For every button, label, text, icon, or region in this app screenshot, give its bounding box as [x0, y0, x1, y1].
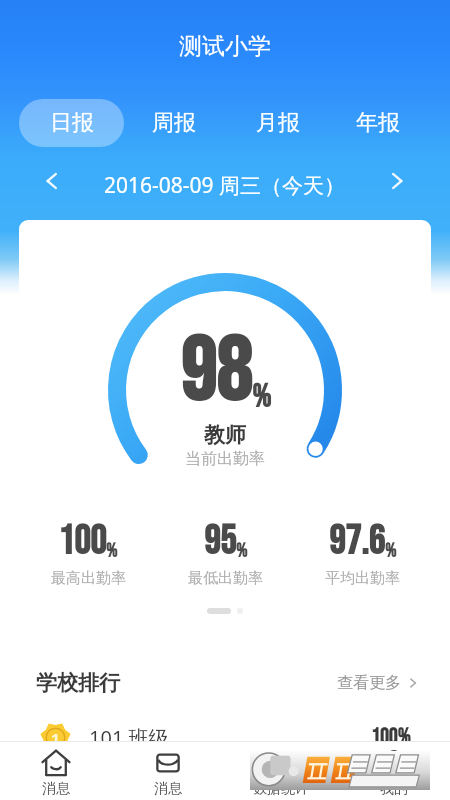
- staticText: 平均出勤率: [325, 569, 400, 588]
- staticText: 最低出勤率: [188, 569, 263, 588]
- staticText: %: [252, 378, 271, 416]
- staticText: %: [236, 540, 248, 563]
- staticText: 学校排行: [36, 670, 120, 696]
- staticText: 98: [180, 320, 252, 427]
- staticText: 100: [58, 518, 106, 566]
- staticText: 测试小学: [179, 32, 271, 61]
- button[interactable]: 消息: [0, 742, 112, 800]
- button[interactable]: Next day: [381, 165, 413, 197]
- button[interactable]: 我的: [337, 742, 450, 800]
- button[interactable]: 数据统计: [224, 742, 337, 800]
- staticText: 1: [51, 728, 60, 748]
- staticText: 数据统计: [253, 780, 309, 798]
- button[interactable]: 日报: [19, 99, 124, 147]
- staticText: 100%: [371, 724, 411, 750]
- staticText: 我的: [380, 780, 408, 798]
- staticText: 当前出勤率: [185, 449, 265, 469]
- staticText: %: [385, 540, 397, 563]
- staticText: 95: [204, 518, 236, 566]
- staticText: 周报: [152, 109, 196, 137]
- staticText: 最高出勤率: [51, 569, 126, 588]
- staticText: 消息: [42, 780, 70, 798]
- staticText: 月报: [256, 109, 300, 137]
- button[interactable]: Previous day: [36, 165, 68, 197]
- button[interactable]: 学校排行: [36, 655, 419, 711]
- button[interactable]: 年报: [346, 99, 410, 147]
- staticText: 查看更多: [337, 673, 401, 693]
- button[interactable]: 月报: [246, 99, 310, 147]
- staticText: 2016-08-09 周三（今天）: [104, 171, 346, 200]
- button[interactable]: 周报: [142, 99, 206, 147]
- button[interactable]: 1: [40, 711, 411, 763]
- button[interactable]: 消息: [112, 742, 224, 800]
- staticText: 消息: [154, 780, 182, 798]
- staticText: 年报: [356, 109, 400, 137]
- staticText: 日报: [50, 109, 94, 137]
- staticText: 教师: [204, 422, 246, 448]
- staticText: 101 班级: [89, 724, 169, 751]
- staticText: 97.6: [329, 518, 385, 566]
- staticText: %: [106, 540, 118, 563]
